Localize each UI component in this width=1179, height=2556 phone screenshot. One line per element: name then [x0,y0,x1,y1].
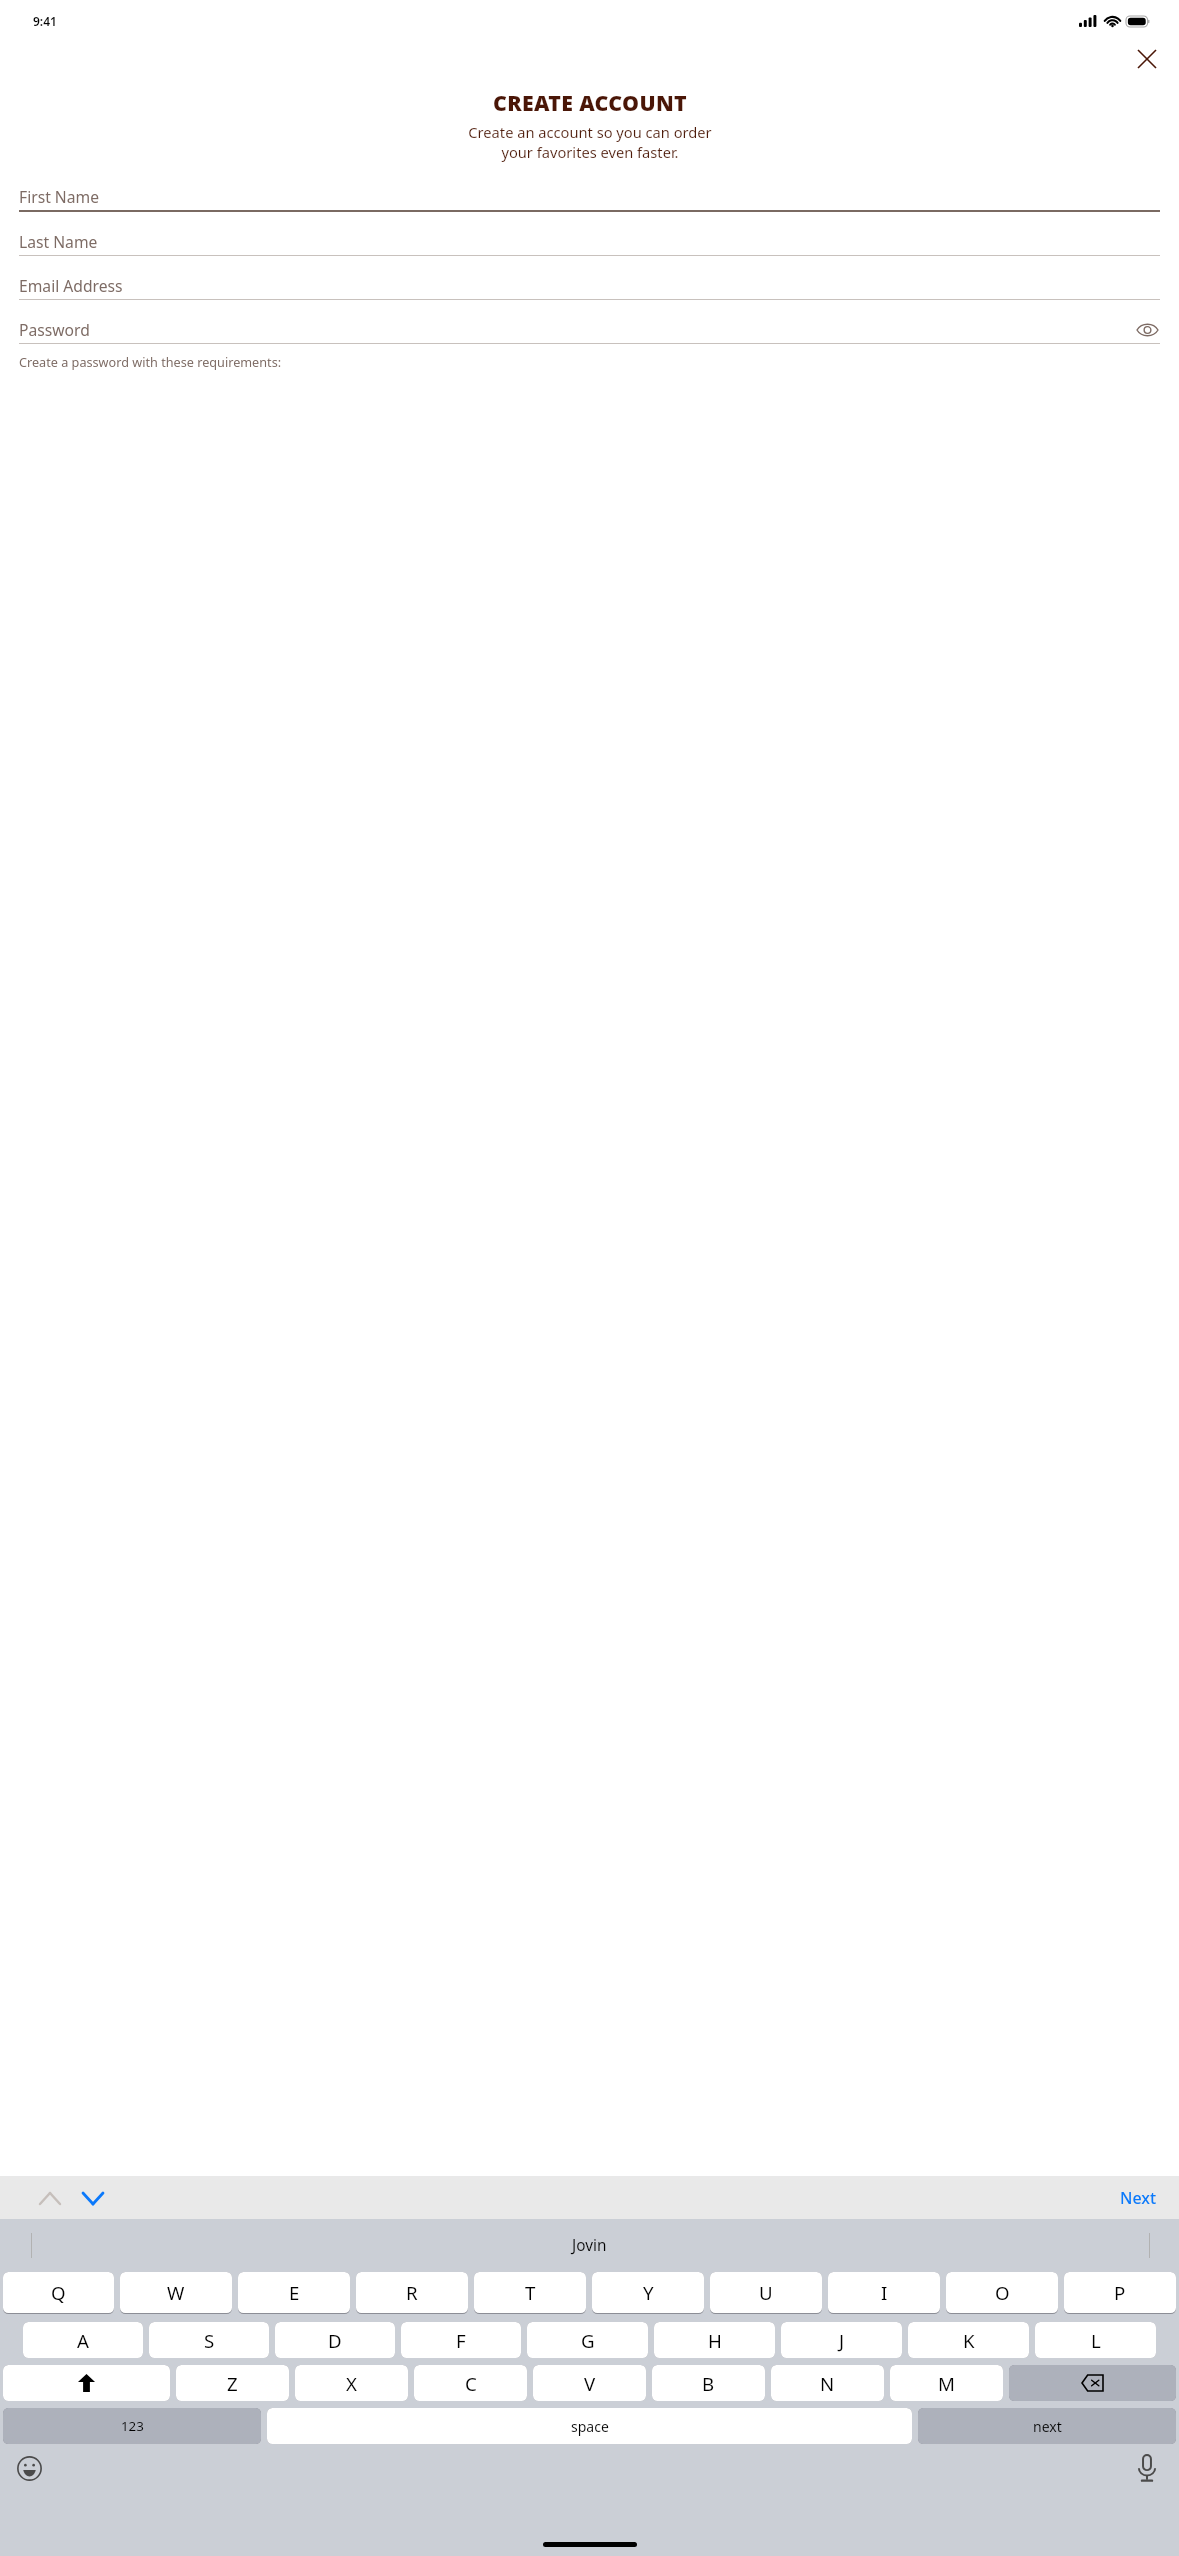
button[interactable]: J [781,2322,902,2358]
button[interactable]: U [710,2272,822,2313]
staticText: R [406,2280,418,2305]
staticText: Create an account so you can order your … [468,122,712,162]
staticText: G [581,2328,595,2353]
staticText: V [584,2371,596,2396]
staticText: B [702,2371,715,2396]
button[interactable]: Next [1117,2184,1160,2212]
button[interactable]: Dictation [1131,2452,1163,2484]
staticText: space [571,2417,609,2436]
button[interactable]: next [918,2408,1176,2444]
staticText: Jovin [572,2235,607,2256]
button[interactable]: P [1064,2272,1176,2313]
staticText: P [1114,2280,1126,2305]
staticText: First Name [19,186,100,207]
staticText: F [456,2328,466,2353]
staticText: Q [51,2280,66,2305]
button[interactable]: N [771,2365,884,2401]
staticText: W [167,2280,185,2305]
button[interactable]: Show password [1135,317,1160,342]
button[interactable]: I [828,2272,940,2313]
staticText: L [1091,2328,1101,2353]
button[interactable]: G [527,2322,648,2358]
staticText: CREATE ACCOUNT [493,88,687,117]
staticText: K [963,2328,975,2353]
staticText: E [289,2280,300,2305]
button[interactable]: Emoji [13,2452,45,2484]
staticText: Last Name [19,231,98,252]
button[interactable]: Y [592,2272,704,2313]
button[interactable]: Jovin [568,2231,611,2260]
button[interactable]: Next field [78,2183,108,2213]
staticText: O [995,2280,1010,2305]
staticText: X [346,2371,357,2396]
button[interactable]: Backspace [1009,2365,1176,2401]
button[interactable]: First Name [19,182,1160,212]
staticText: Create a password with these requirement… [19,353,282,370]
button[interactable]: Shift [3,2365,170,2401]
staticText: A [77,2328,89,2353]
staticText: H [708,2328,722,2353]
staticText: Email Address [19,275,123,296]
button[interactable]: T [474,2272,586,2313]
staticText: 9:41 [33,13,57,29]
staticText: U [759,2280,773,2305]
staticText: T [525,2280,536,2305]
button[interactable]: Z [176,2365,289,2401]
button[interactable]: W [120,2272,232,2313]
staticText: S [204,2328,215,2353]
staticText: 123 [121,2417,144,2435]
button[interactable]: Previous field [35,2183,65,2213]
button[interactable]: Q [3,2272,114,2313]
button[interactable]: D [275,2322,395,2358]
button[interactable]: Password [19,315,1160,344]
staticText: D [328,2328,342,2353]
button[interactable]: S [149,2322,269,2358]
staticText: next [1033,2417,1062,2436]
staticText: J [839,2328,845,2353]
staticText: N [820,2371,835,2396]
button[interactable]: C [414,2365,527,2401]
staticText: I [881,2280,888,2305]
button[interactable]: X [295,2365,408,2401]
staticText: Password [19,319,90,340]
button[interactable]: K [908,2322,1029,2358]
button[interactable]: Last Name [19,227,1160,256]
button[interactable]: O [946,2272,1058,2313]
button[interactable]: E [238,2272,350,2313]
staticText: M [938,2371,955,2396]
button[interactable]: Email Address [19,271,1160,300]
button[interactable]: M [890,2365,1003,2401]
staticText: Z [227,2371,238,2396]
staticText: Next [1120,2187,1157,2209]
button[interactable]: Close [1131,43,1162,74]
button[interactable]: R [356,2272,468,2313]
button[interactable]: 123 [3,2408,261,2444]
button[interactable]: V [533,2365,646,2401]
button[interactable]: B [652,2365,765,2401]
button[interactable]: F [401,2322,521,2358]
button[interactable]: A [23,2322,143,2358]
button[interactable]: H [654,2322,775,2358]
button[interactable]: L [1035,2322,1156,2358]
button[interactable]: space [267,2408,912,2444]
staticText: C [465,2371,477,2396]
staticText: Y [643,2280,654,2305]
